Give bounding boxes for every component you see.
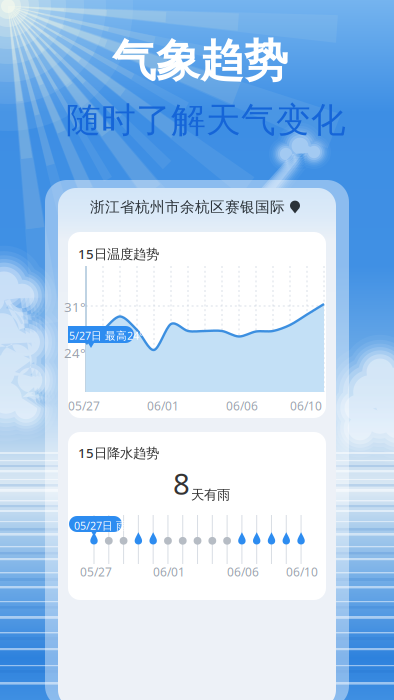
button[interactable]: 浙江省杭州市余杭区赛银国际 [90,198,301,216]
staticText: 浙江省杭州市余杭区赛银国际 [90,198,285,216]
staticText: 06/06 [226,398,258,414]
staticText: 05/27 [80,564,112,580]
staticText: 5/27日 最高24° [69,328,144,343]
staticText: 06/10 [286,564,318,580]
staticText: 天有雨 [191,487,230,503]
staticText: 31° [64,298,86,316]
staticText: 随时了解天气变化 [66,99,346,142]
staticText: 15日降水趋势 [78,444,159,462]
staticText: 06/01 [147,398,179,414]
staticText: 05/27日 雨 [74,518,127,533]
staticText: 06/06 [227,564,259,580]
staticText: 06/01 [153,564,185,580]
staticText: 气象趋势 [112,34,288,88]
staticText: 06/10 [290,398,322,414]
staticText: 24° [64,344,86,362]
staticText: 15日温度趋势 [78,245,159,263]
staticText: 8 [173,464,190,503]
staticText: 05/27 [68,398,100,414]
